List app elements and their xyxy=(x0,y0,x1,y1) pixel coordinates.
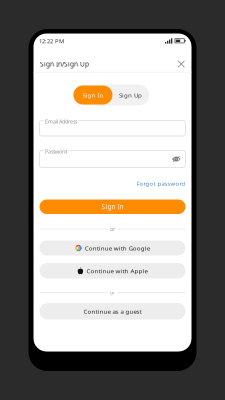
staticText: Sign Up xyxy=(119,91,142,99)
button[interactable]: Sign In/Sign Up xyxy=(33,48,191,72)
button[interactable]: Continue as a guest xyxy=(39,303,185,319)
staticText: 12:22 PM xyxy=(39,37,64,45)
button[interactable]: Continue with Apple xyxy=(39,263,185,278)
staticText: Email Address xyxy=(45,118,77,125)
button[interactable]: Email Address xyxy=(39,120,185,136)
button[interactable]: Continue with Google xyxy=(39,240,185,255)
staticText: Sign In xyxy=(82,91,103,99)
button[interactable]: Forgot password xyxy=(39,167,185,187)
button[interactable]: Password xyxy=(39,150,185,167)
staticText: Continue as a guest xyxy=(83,307,141,315)
staticText: or xyxy=(110,225,115,233)
staticText: Continue with Apple xyxy=(86,267,147,275)
button[interactable]: Sign In xyxy=(39,199,185,214)
staticText: Sign In xyxy=(101,202,123,211)
staticText: or xyxy=(110,289,115,296)
staticText: Sign In/Sign Up xyxy=(40,60,89,68)
button[interactable]: Sign In xyxy=(73,85,112,104)
staticText: Continue with Google xyxy=(85,244,150,252)
staticText: Password xyxy=(45,148,67,155)
button[interactable]: Sign Up xyxy=(112,85,148,104)
staticText: Forgot password xyxy=(136,179,185,187)
